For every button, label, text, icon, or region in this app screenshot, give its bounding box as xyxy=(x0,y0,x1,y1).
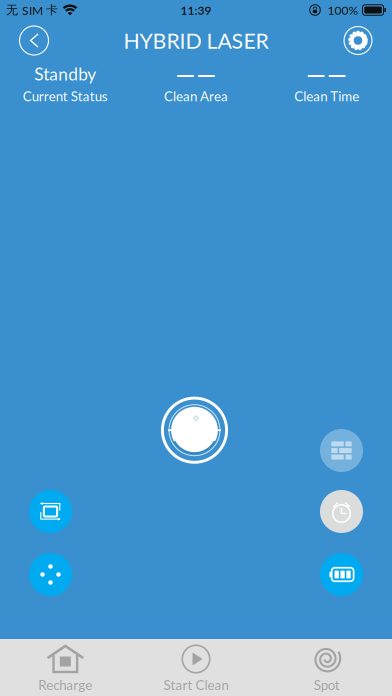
button[interactable]: Spot clean xyxy=(29,553,72,596)
staticText: Start Clean xyxy=(163,677,228,693)
staticText: HYBRID LASER xyxy=(123,28,268,53)
staticText: Clean Time xyxy=(294,88,359,104)
staticText: Clean Area xyxy=(164,88,228,104)
button[interactable]: Settings xyxy=(334,19,382,61)
button[interactable]: Zone clean xyxy=(29,490,72,533)
staticText: Standby xyxy=(34,64,96,84)
staticText: 11:39 xyxy=(180,3,211,17)
staticText: 无 SIM 卡 xyxy=(6,3,58,17)
staticText: 100% xyxy=(327,3,358,17)
staticText: Spot xyxy=(314,677,340,693)
staticText: Recharge xyxy=(38,677,92,693)
button[interactable]: Virtual wall xyxy=(320,429,363,472)
button[interactable]: Start Clean xyxy=(131,639,261,696)
staticText: Current Status xyxy=(23,88,108,104)
button[interactable]: Spot xyxy=(261,639,392,696)
button[interactable]: Schedule xyxy=(320,490,363,533)
button[interactable]: Battery xyxy=(320,553,363,596)
button[interactable]: Back xyxy=(10,19,58,61)
button[interactable]: Recharge xyxy=(0,639,131,696)
